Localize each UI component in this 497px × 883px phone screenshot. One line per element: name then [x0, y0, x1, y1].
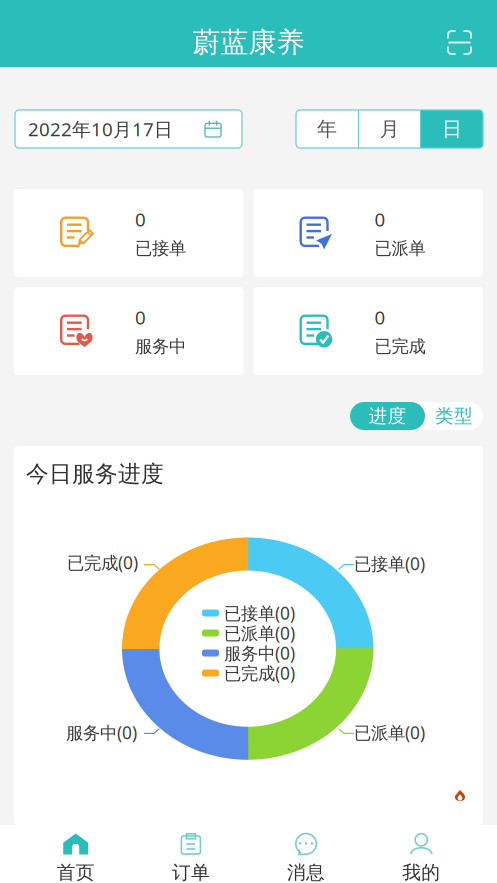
button[interactable]: 消息	[267, 825, 346, 883]
staticText: 已接单(0)	[224, 601, 295, 624]
staticText: 已完成(0)	[224, 661, 295, 684]
staticText: 服务中(0)	[66, 721, 137, 744]
staticText: 进度	[368, 404, 406, 427]
button[interactable]: 0	[253, 189, 483, 277]
button[interactable]: 0	[253, 287, 483, 375]
button[interactable]: 0	[14, 189, 243, 277]
button[interactable]: 我的	[382, 825, 461, 883]
staticText: 今日服务进度	[26, 460, 164, 488]
staticText: 0	[135, 305, 146, 330]
staticText: 2022年10月17日	[28, 117, 173, 141]
staticText: 订单	[172, 861, 210, 883]
button[interactable]: 首页	[36, 825, 115, 883]
staticText: 消息	[287, 861, 325, 883]
button[interactable]: 订单	[151, 825, 230, 883]
staticText: 类型	[435, 404, 473, 427]
button[interactable]: 类型	[425, 402, 483, 430]
staticText: 月	[379, 117, 399, 141]
staticText: 已完成(0)	[67, 551, 138, 574]
button[interactable]: 日	[421, 110, 483, 148]
staticText: 首页	[57, 861, 95, 883]
staticText: 已派单(0)	[224, 621, 295, 644]
button[interactable]: 扫一扫	[440, 23, 479, 62]
staticText: 0	[374, 207, 385, 232]
button[interactable]: 年	[296, 110, 358, 148]
staticText: 我的	[402, 861, 440, 883]
staticText: 已完成	[374, 336, 425, 357]
staticText: 已派单(0)	[354, 721, 425, 744]
staticText: 0	[135, 207, 146, 232]
staticText: 蔚蓝康养	[192, 25, 304, 60]
staticText: 0	[374, 305, 385, 330]
staticText: 服务中(0)	[224, 641, 295, 664]
button[interactable]: 月	[359, 110, 420, 148]
staticText: 服务中	[135, 336, 186, 357]
staticText: 已派单	[374, 238, 425, 259]
button[interactable]: 进度	[350, 402, 425, 430]
staticText: 已接单(0)	[354, 552, 425, 575]
staticText: 日	[442, 117, 462, 141]
staticText: 已接单	[135, 238, 186, 259]
button[interactable]: 2022年10月17日	[15, 110, 242, 148]
button[interactable]: 0	[14, 287, 243, 375]
staticText: 年	[317, 117, 337, 141]
